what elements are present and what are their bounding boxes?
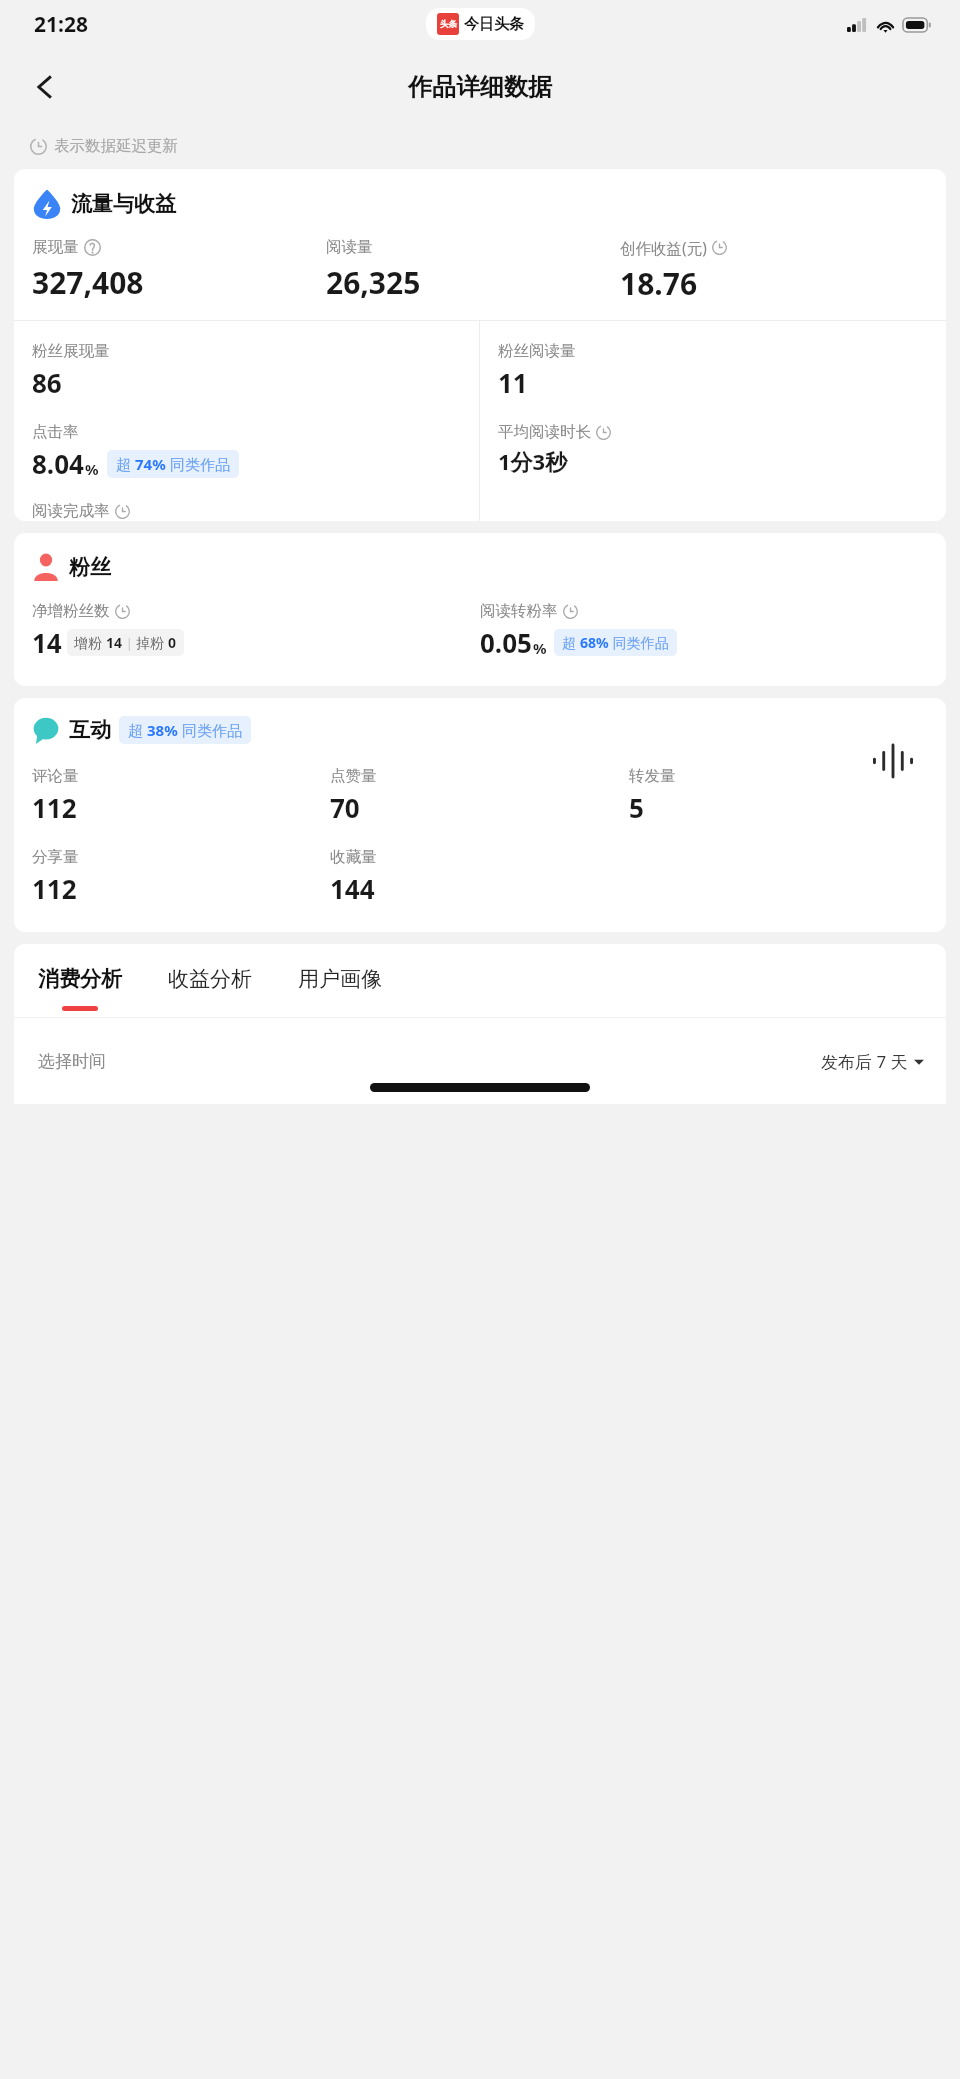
staticText: 5 <box>629 790 644 825</box>
staticText: 创作收益(元) <box>620 237 707 258</box>
staticText: 粉丝阅读量 <box>498 341 576 361</box>
staticText: 超 <box>128 720 147 740</box>
button[interactable]: 用户画像 <box>298 966 382 1017</box>
staticText: 净增粉丝数 <box>32 601 110 621</box>
staticText: 转发量 <box>629 766 676 786</box>
staticText: 增粉 <box>74 633 106 652</box>
staticText: 发布后 7 天 <box>821 1050 908 1073</box>
staticText: 11 <box>498 365 528 400</box>
staticText: 超 <box>116 454 135 474</box>
staticText: 86 <box>32 365 62 400</box>
staticText: 消费分析 <box>38 966 122 992</box>
staticText: 26,325 <box>326 262 421 303</box>
staticText: 18.76 <box>620 263 698 304</box>
staticText: 112 <box>32 871 77 906</box>
staticText: 平均阅读时长 <box>498 422 591 442</box>
button[interactable]: 发布后 7 天 <box>821 1050 924 1073</box>
button[interactable]: 收益分析 <box>168 966 252 1017</box>
staticText: 评论量 <box>32 766 79 786</box>
staticText: 超 <box>562 633 580 652</box>
staticText: 68% <box>580 633 609 652</box>
staticText: 14 <box>32 625 62 660</box>
staticText: | <box>123 635 136 651</box>
staticText: 1分3秒 <box>498 446 568 476</box>
staticText: 点赞量 <box>330 766 377 786</box>
staticText: 展现量 <box>32 237 79 257</box>
staticText: 8.04 <box>32 446 84 481</box>
staticText: 粉丝展现量 <box>32 341 110 361</box>
staticText: 14 <box>106 633 123 652</box>
staticText: 70 <box>330 790 360 825</box>
staticText: 阅读转粉率 <box>480 601 558 621</box>
staticText: 用户画像 <box>298 966 382 992</box>
staticText: 38% <box>147 720 178 740</box>
button[interactable]: Back <box>18 60 72 114</box>
button[interactable]: Play audio <box>850 718 936 804</box>
staticText: 收藏量 <box>330 847 377 867</box>
staticText: % <box>533 638 547 658</box>
staticText: 流量与收益 <box>71 191 176 217</box>
staticText: 今日头条 <box>464 15 524 34</box>
staticText: 144 <box>330 871 375 906</box>
staticText: 74% <box>135 454 166 474</box>
staticText: 21:28 <box>34 10 88 39</box>
staticText: 同类作品 <box>178 720 242 740</box>
staticText: 收益分析 <box>168 966 252 992</box>
button[interactable]: 消费分析 <box>38 966 122 1017</box>
staticText: 掉粉 <box>136 633 168 652</box>
staticText: 同类作品 <box>166 454 230 474</box>
staticText: 头条 <box>440 19 457 30</box>
staticText: 点击率 <box>32 422 79 442</box>
staticText: 112 <box>32 790 77 825</box>
staticText: 选择时间 <box>38 1051 106 1072</box>
staticText: 0.05 <box>480 625 532 660</box>
staticText: 327,408 <box>32 262 144 303</box>
staticText: 互动 <box>69 717 111 743</box>
staticText: % <box>85 459 99 479</box>
staticText: 分享量 <box>32 847 79 867</box>
staticText: 阅读量 <box>326 237 373 257</box>
staticText: 同类作品 <box>609 633 669 652</box>
staticText: 粉丝 <box>69 554 111 580</box>
staticText: 阅读完成率 <box>32 501 110 521</box>
staticText: 表示数据延迟更新 <box>54 136 178 156</box>
staticText: 0 <box>168 633 177 652</box>
staticText: 作品详细数据 <box>408 72 552 102</box>
